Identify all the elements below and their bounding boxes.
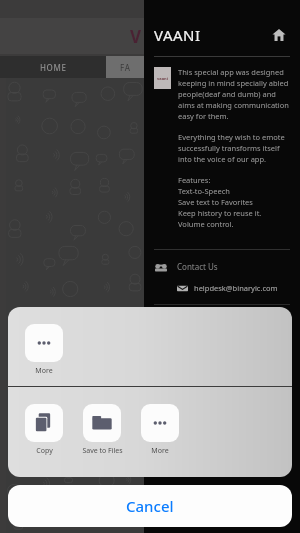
staticText: HOME — [40, 62, 67, 73]
staticText: VAANI — [154, 25, 201, 45]
button[interactable]: More — [136, 404, 184, 456]
staticText: Copy — [36, 446, 53, 456]
staticText: Contact Us — [177, 261, 218, 272]
staticText: Features: Text-to-Speech Save text to Fa… — [178, 175, 262, 229]
staticText: This special app was designed keeping in… — [178, 67, 290, 121]
button[interactable]: helpdesk@binaryic.com — [176, 282, 290, 294]
button[interactable]: Cancel — [8, 485, 292, 527]
button[interactable]: Home — [268, 24, 290, 46]
staticText: vaani — [157, 76, 168, 81]
staticText: V — [130, 25, 142, 48]
staticText: helpdesk@binaryic.com — [194, 283, 278, 293]
staticText: Everything they wish to emote successful… — [178, 132, 290, 164]
staticText: FA — [120, 62, 131, 73]
staticText: Cancel — [126, 496, 174, 516]
staticText: Save to Files — [82, 446, 123, 456]
button[interactable]: FA — [106, 56, 144, 78]
staticText: More — [151, 446, 169, 456]
staticText: More — [35, 366, 53, 376]
button[interactable]: More — [20, 324, 68, 376]
button[interactable]: Copy — [20, 404, 68, 456]
button[interactable]: HOME — [0, 56, 106, 78]
button[interactable]: Contact Us — [154, 260, 290, 273]
button[interactable]: Save to Files — [78, 404, 126, 456]
